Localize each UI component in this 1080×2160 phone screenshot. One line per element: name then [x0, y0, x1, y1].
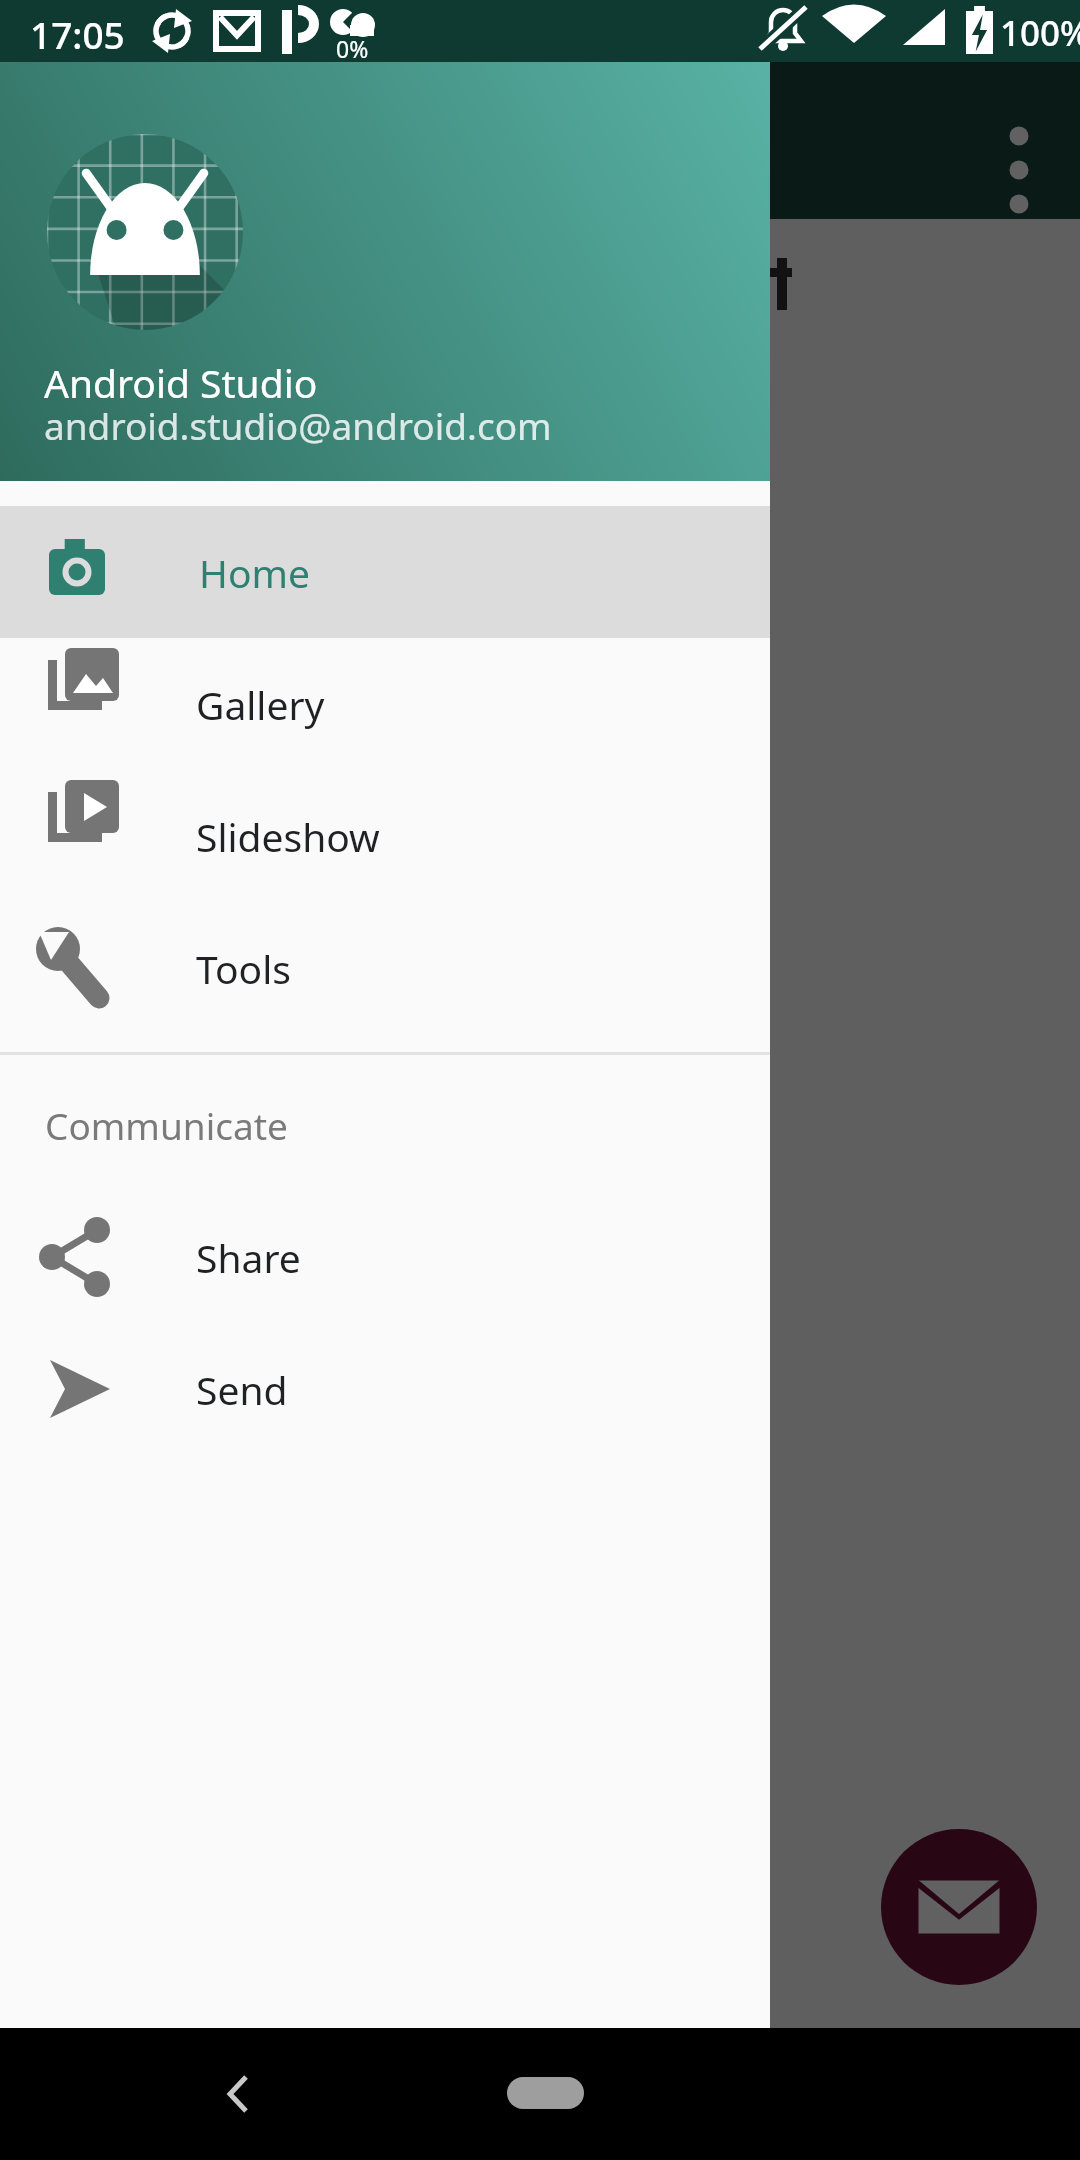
button[interactable]: Gallery: [0, 638, 770, 770]
button[interactable]: Send: [0, 1323, 770, 1455]
staticText: 0%: [336, 33, 369, 64]
staticText: Home: [199, 546, 310, 599]
button[interactable]: Send email: [881, 1829, 1037, 1985]
staticText: Tools: [196, 942, 291, 995]
button[interactable]: Home: [485, 2040, 605, 2160]
staticText: Gallery: [196, 678, 325, 731]
staticText: 17:05: [30, 9, 125, 59]
staticText: Send: [196, 1363, 288, 1416]
button[interactable]: Slideshow: [0, 770, 770, 902]
button[interactable]: More options: [975, 100, 1065, 190]
staticText: Android Studio: [44, 356, 318, 409]
button[interactable]: Share: [0, 1191, 770, 1323]
staticText: 100%: [1000, 9, 1080, 57]
button[interactable]: Tools: [0, 902, 770, 1034]
button[interactable]: Back: [176, 2040, 296, 2160]
staticText: Communicate: [45, 1100, 288, 1150]
staticText: Share: [196, 1231, 301, 1284]
staticText: Slideshow: [196, 810, 380, 863]
button[interactable]: Home: [0, 506, 770, 638]
staticText: android.studio@android.com: [44, 400, 552, 450]
